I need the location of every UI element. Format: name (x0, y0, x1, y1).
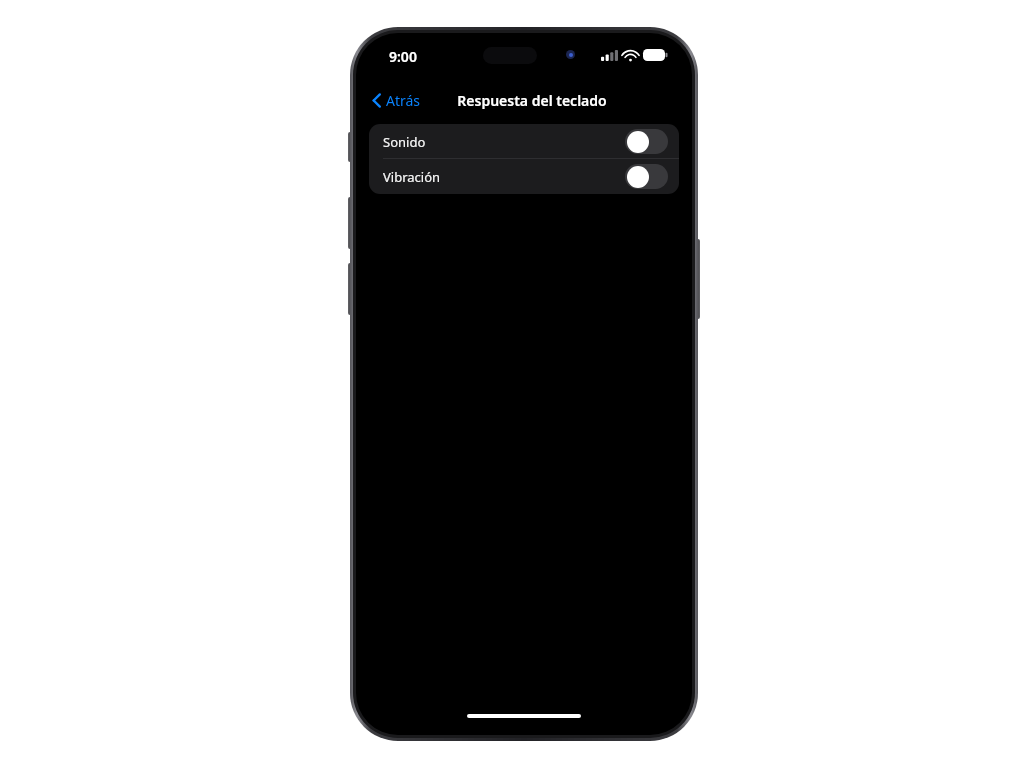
staticText: 9:00 (389, 47, 417, 66)
button[interactable]: Activar o desactivar (625, 129, 668, 154)
staticText: Sonido (383, 133, 426, 151)
button[interactable]: Sonido (369, 124, 679, 159)
staticText: Vibración (383, 168, 441, 186)
button[interactable]: Vibración (369, 159, 679, 194)
button[interactable]: Activar o desactivar (625, 164, 668, 189)
staticText: Atrás (386, 91, 421, 110)
button[interactable]: Atrás (366, 87, 427, 114)
staticText: Respuesta del teclado (457, 91, 607, 110)
